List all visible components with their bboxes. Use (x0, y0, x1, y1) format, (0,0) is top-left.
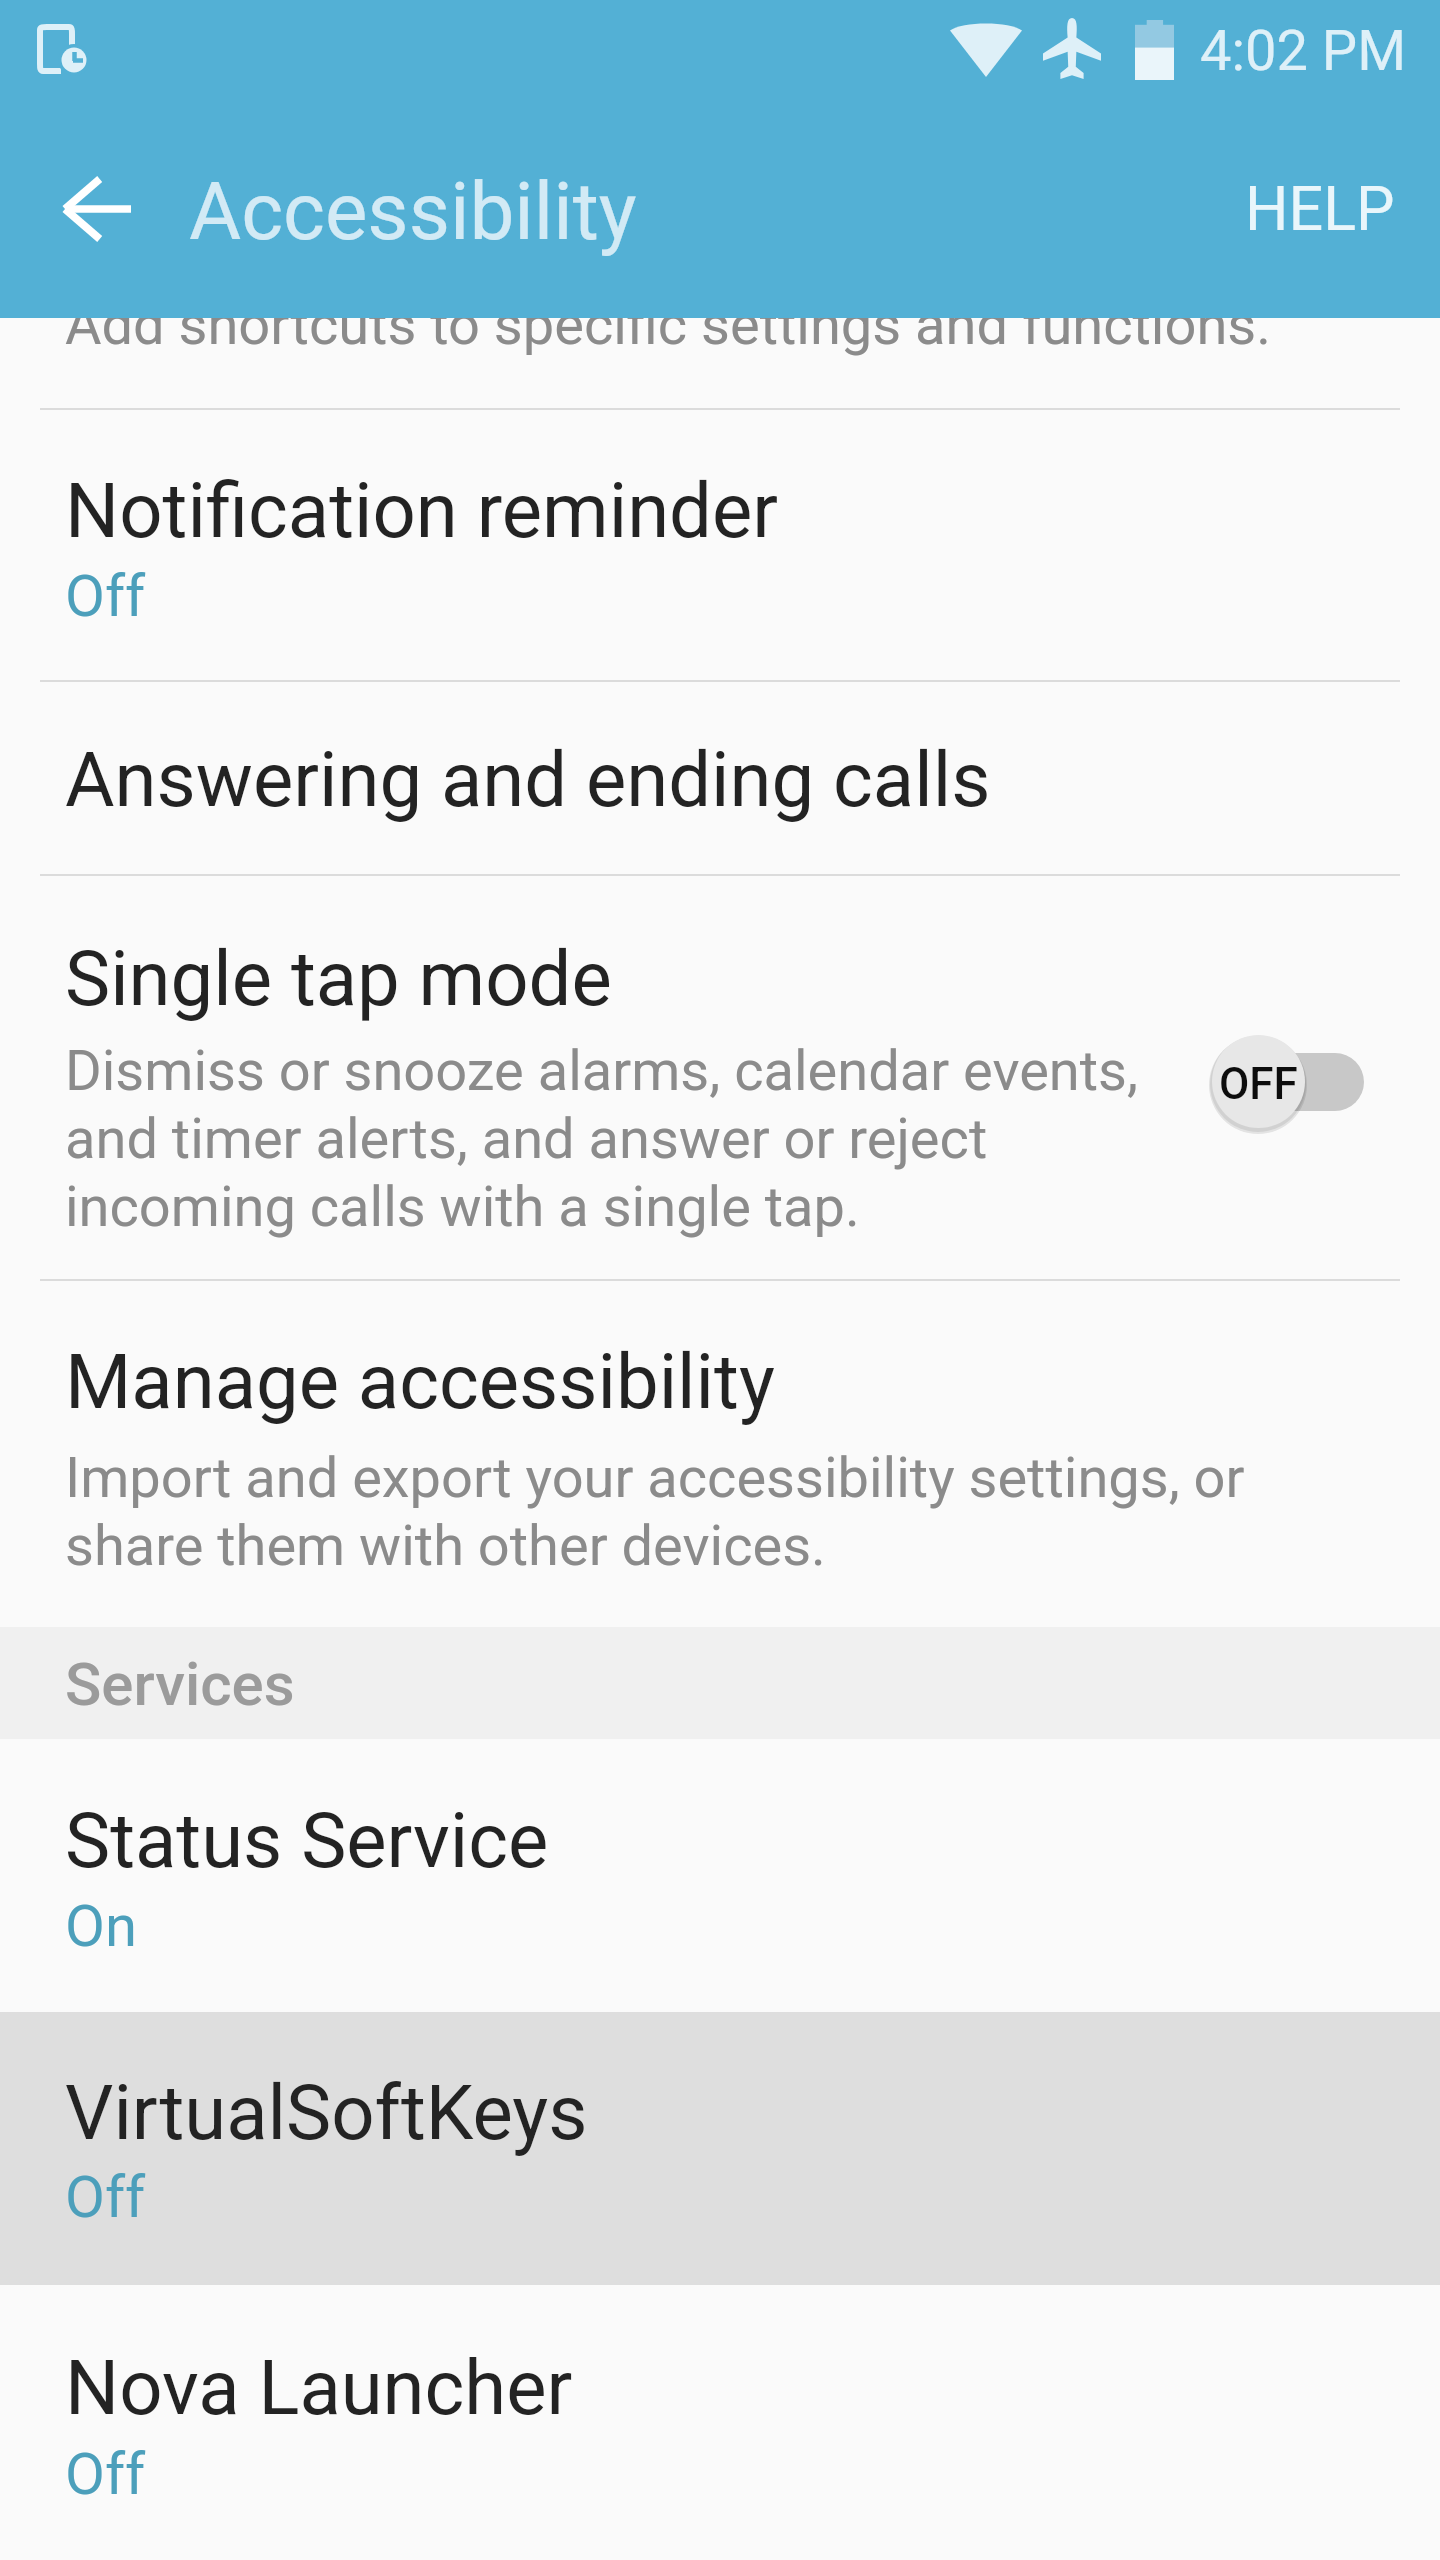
staticText: Single tap mode (65, 934, 612, 1023)
button[interactable]: VirtualSoftKeys (0, 2012, 1440, 2285)
staticText: Accessibility (189, 165, 637, 259)
staticText: VirtualSoftKeys (65, 2068, 588, 2157)
button[interactable]: Status Service (0, 1739, 1440, 2012)
staticText: Off (65, 562, 146, 630)
button[interactable]: Single tap mode toggle (1212, 1034, 1382, 1144)
staticText: On (65, 1892, 137, 1960)
staticText: Notification reminder (65, 466, 779, 555)
button[interactable]: Answering and ending calls (0, 682, 1440, 874)
staticText: Services (65, 1649, 295, 1719)
button[interactable]: Manage accessibility (0, 1281, 1440, 1627)
staticText: HELP (1245, 173, 1395, 244)
staticText: Status Service (65, 1796, 549, 1885)
staticText: Add shortcuts to specific settings and f… (65, 292, 1271, 358)
staticText: Off (65, 2163, 146, 2231)
button[interactable]: Nova Launcher (0, 2285, 1440, 2560)
button[interactable]: Single tap mode (0, 876, 1440, 1279)
staticText: Import and export your accessibility set… (65, 1445, 1280, 1579)
staticText: Manage accessibility (65, 1337, 775, 1426)
staticText: Nova Launcher (65, 2343, 573, 2432)
staticText: Dismiss or snooze alarms, calendar event… (65, 1038, 1175, 1240)
staticText: Answering and ending calls (65, 735, 991, 824)
staticText: OFF (1219, 1058, 1298, 1110)
staticText: Off (65, 2440, 146, 2508)
staticText: 4:02 PM (1200, 18, 1407, 84)
button[interactable]: HELP (1196, 132, 1396, 304)
button[interactable]: Notification reminder (0, 410, 1440, 680)
button[interactable]: Navigate up (18, 151, 174, 285)
